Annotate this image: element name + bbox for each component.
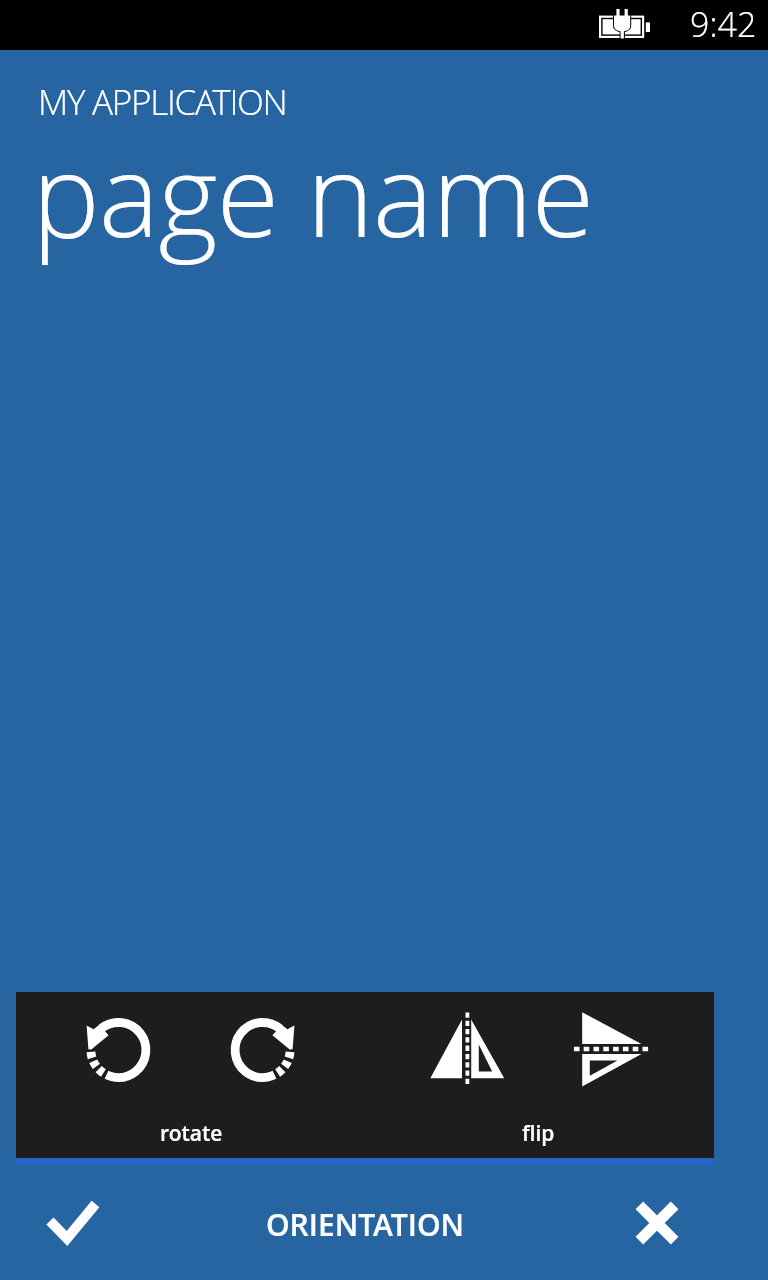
button[interactable]: Accept [10, 1177, 130, 1267]
button[interactable]: Rotate left [68, 994, 172, 1106]
button[interactable]: Cancel [598, 1175, 716, 1270]
button[interactable]: Rotate right [209, 994, 313, 1106]
staticText: page name [32, 115, 593, 270]
button[interactable]: ORIENTATION [200, 1177, 530, 1272]
staticText: flip [522, 1119, 555, 1148]
button[interactable]: rotate [109, 1116, 273, 1150]
button[interactable]: flip [458, 1116, 618, 1150]
staticText: MY APPLICATION [38, 78, 287, 126]
button[interactable]: Flip vertical [558, 989, 662, 1101]
staticText: ORIENTATION [266, 1204, 465, 1245]
button[interactable]: Flip horizontal [417, 991, 521, 1103]
staticText: 9:42 [690, 1, 757, 47]
staticText: rotate [160, 1119, 223, 1148]
